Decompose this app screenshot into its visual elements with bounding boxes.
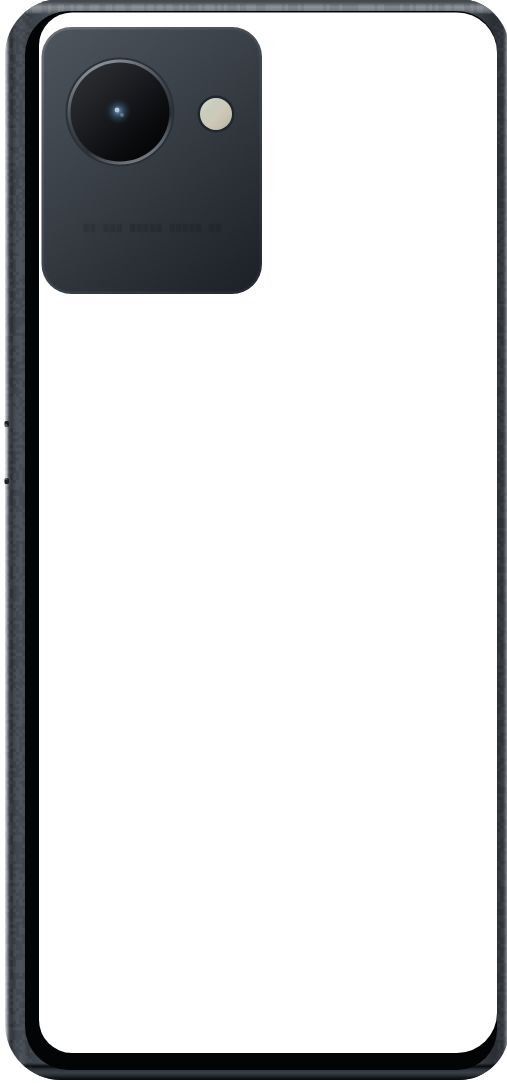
button[interactable]: Volume button xyxy=(4,421,14,484)
button[interactable]: Camera module xyxy=(41,27,262,294)
